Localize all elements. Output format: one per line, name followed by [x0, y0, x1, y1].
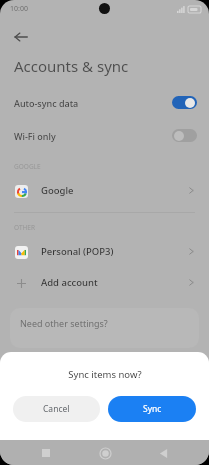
button[interactable]: Add account	[0, 267, 209, 298]
staticText: 10:00	[10, 4, 28, 14]
staticText: Accounts & sync	[14, 56, 129, 76]
button[interactable]: Sync	[108, 396, 196, 422]
staticText: Need other settings?	[20, 317, 108, 329]
staticText: Sync items now?	[68, 368, 142, 381]
button[interactable]: Auto-sync data	[0, 86, 209, 119]
button[interactable]: Need other settings?	[10, 308, 199, 348]
staticText: GOOGLE	[14, 162, 41, 171]
button[interactable]: Back	[151, 441, 175, 465]
staticText: Cancel	[43, 403, 70, 415]
button[interactable]: Wi-Fi only	[0, 119, 209, 152]
staticText: Wi-Fi only	[14, 130, 56, 142]
staticText: Add account	[41, 276, 98, 289]
staticText: Google	[41, 184, 74, 197]
staticText: Personal (POP3)	[41, 245, 114, 258]
staticText: Sync	[143, 403, 162, 415]
button[interactable]: Personal (POP3)	[0, 236, 209, 267]
button[interactable]: Google	[0, 175, 209, 206]
button[interactable]: Home	[93, 441, 117, 465]
button[interactable]: Recents	[34, 441, 58, 465]
staticText: OTHER	[14, 223, 35, 232]
button[interactable]: Back	[8, 24, 34, 50]
button[interactable]: Cancel	[13, 396, 100, 422]
staticText: Auto-sync data	[14, 97, 79, 109]
